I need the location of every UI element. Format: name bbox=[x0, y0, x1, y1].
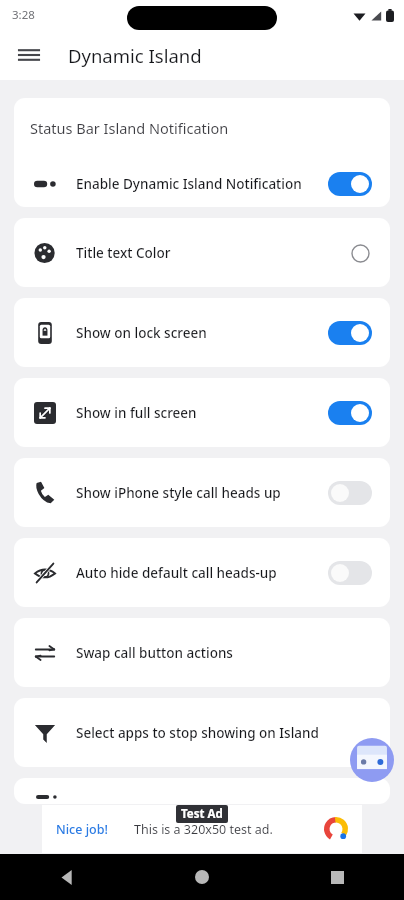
button[interactable]: Show iPhone style call heads up bbox=[14, 458, 390, 527]
staticText: Title text Color bbox=[76, 244, 171, 262]
staticText: Show on lock screen bbox=[76, 324, 207, 342]
button[interactable]: Back bbox=[50, 860, 84, 894]
staticText: Enable Dynamic Island Notification bbox=[76, 175, 302, 193]
button[interactable]: Toggle on bbox=[328, 321, 372, 345]
button[interactable]: Show in full screen bbox=[14, 378, 390, 447]
button[interactable]: Ad badge bbox=[350, 738, 394, 782]
button[interactable]: Toggle off bbox=[328, 561, 372, 585]
button[interactable]: Nice job! bbox=[42, 805, 362, 853]
staticText: Dynamic Island bbox=[68, 43, 202, 68]
button[interactable]: Toggle on bbox=[328, 172, 372, 196]
button[interactable]: Auto hide default call heads-up bbox=[14, 538, 390, 607]
button[interactable]: Home bbox=[185, 860, 219, 894]
staticText: 3:28 bbox=[12, 7, 35, 23]
button[interactable]: Recent apps bbox=[320, 860, 354, 894]
button[interactable]: Select apps to stop showing on Island bbox=[14, 698, 390, 767]
staticText: This is a 320x50 test ad. bbox=[134, 821, 273, 838]
button[interactable]: Status Bar Island Notification bbox=[14, 98, 390, 207]
staticText: Select apps to stop showing on Island bbox=[76, 724, 319, 742]
button[interactable]: Swap call button actions bbox=[14, 618, 390, 687]
button[interactable]: Show on lock screen bbox=[14, 298, 390, 367]
staticText: Swap call button actions bbox=[76, 644, 233, 662]
button[interactable]: Toggle off bbox=[328, 481, 372, 505]
button[interactable]: Title text Color bbox=[14, 218, 390, 287]
staticText: Show in full screen bbox=[76, 404, 197, 422]
staticText: Status Bar Island Notification bbox=[30, 118, 229, 138]
button[interactable] bbox=[14, 778, 390, 804]
staticText: Auto hide default call heads-up bbox=[76, 564, 277, 582]
staticText: Nice job! bbox=[56, 821, 108, 838]
button[interactable]: Pick title color bbox=[348, 241, 372, 265]
button[interactable]: Open navigation menu bbox=[12, 38, 46, 72]
staticText: Show iPhone style call heads up bbox=[76, 484, 281, 502]
button[interactable]: Toggle on bbox=[328, 401, 372, 425]
staticText: Test Ad bbox=[181, 806, 223, 822]
